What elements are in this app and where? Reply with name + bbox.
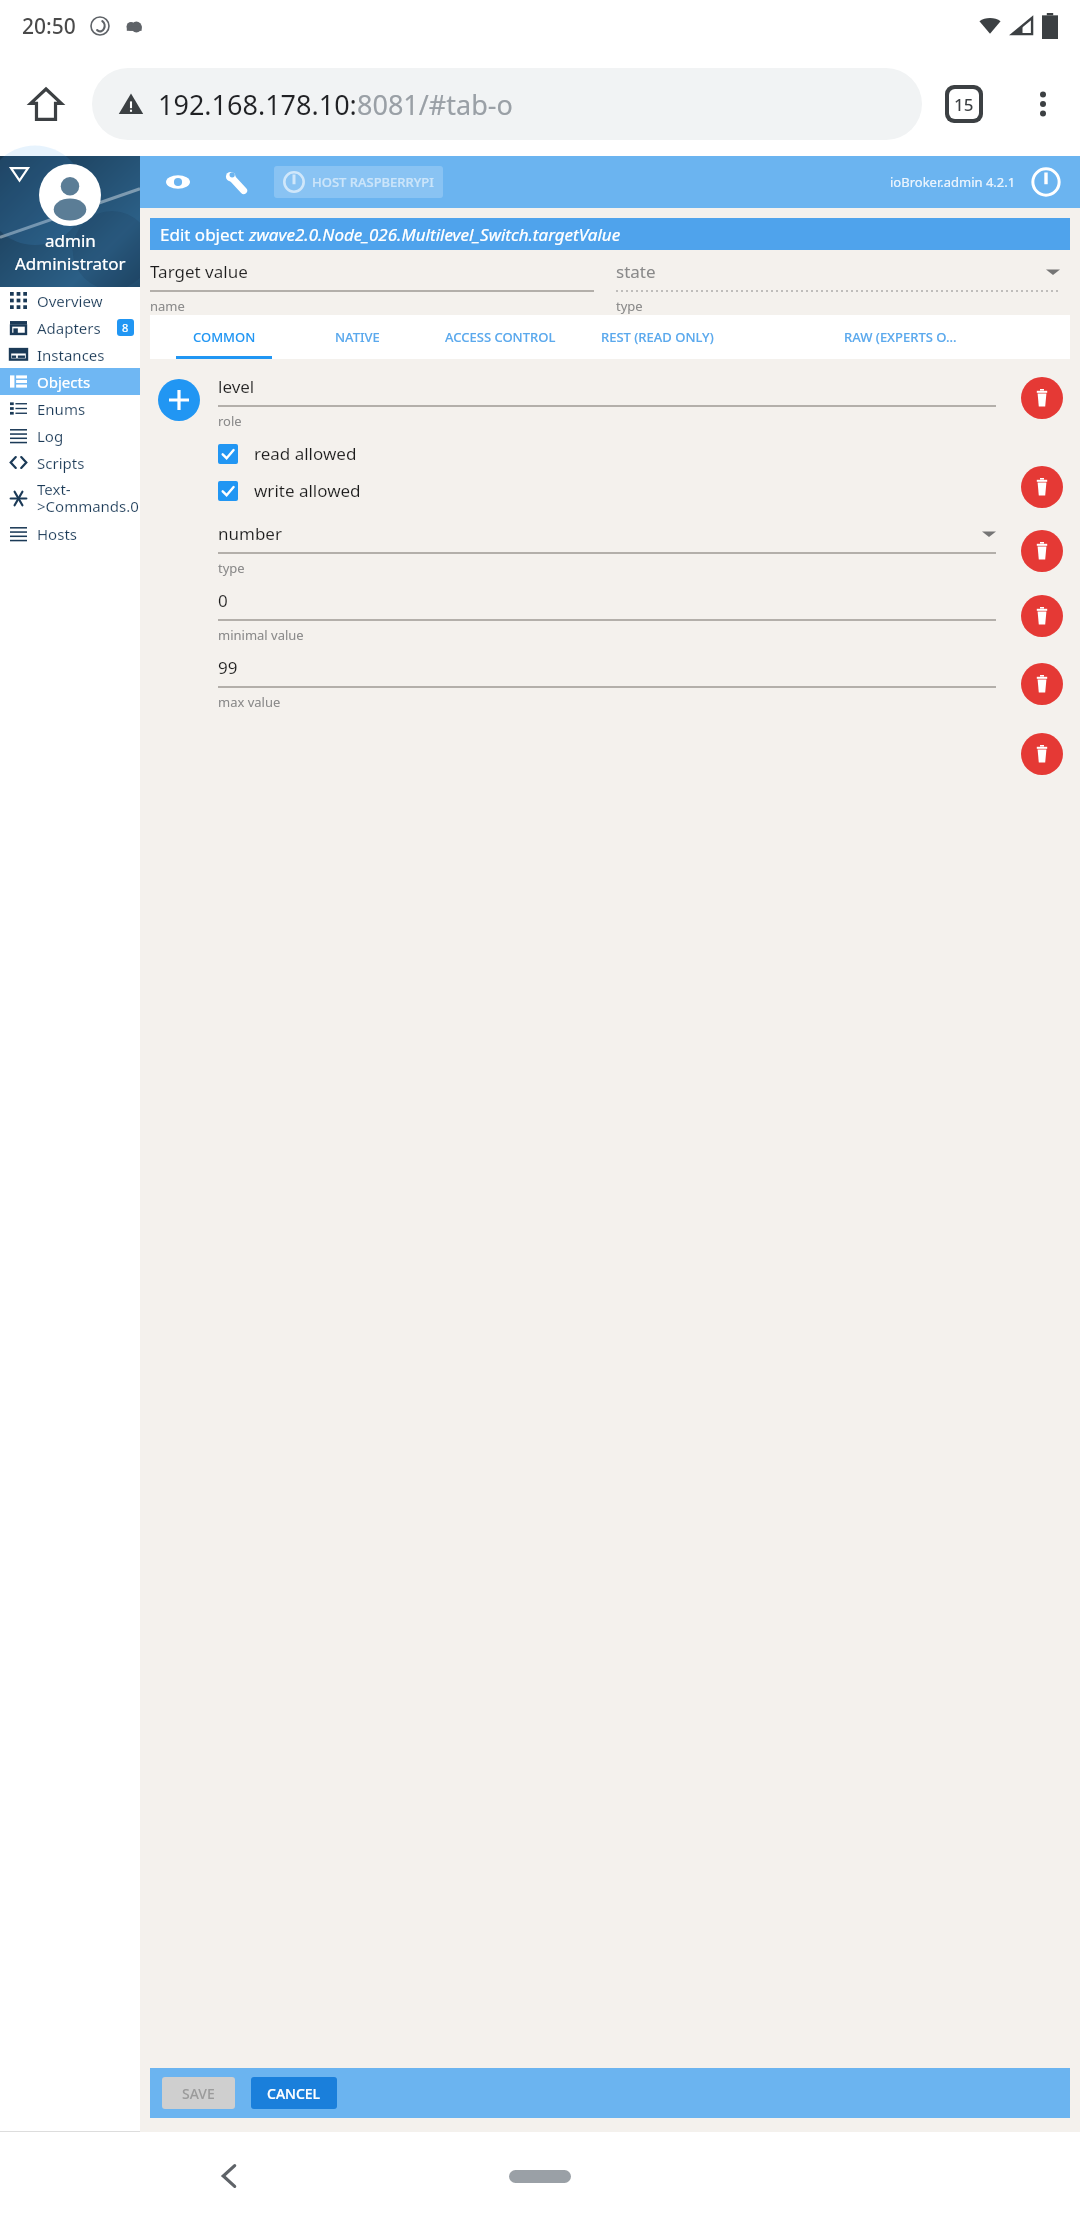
staticText: Instances <box>37 345 140 365</box>
button[interactable]: Hosts <box>0 520 140 547</box>
staticText: admin <box>45 229 96 252</box>
button[interactable]: 192.168.178.10: <box>92 68 922 140</box>
staticText: 192.168.178.10: <box>158 86 357 123</box>
button[interactable]: More options <box>1006 52 1080 156</box>
button[interactable]: Delete <box>1021 530 1063 572</box>
staticText: Adapters <box>37 318 117 338</box>
staticText: CANCEL <box>267 2084 321 2103</box>
button[interactable]: NATIVE <box>298 315 416 359</box>
button[interactable]: Delete <box>1021 595 1063 637</box>
button[interactable]: Expert mode <box>156 160 200 204</box>
staticText: Text- >Commands.0 <box>37 479 140 517</box>
staticText: SAVE <box>182 2084 215 2103</box>
staticText: write allowed <box>254 479 361 502</box>
button[interactable]: Instances <box>0 341 140 368</box>
button[interactable]: CANCEL <box>251 2077 337 2109</box>
button[interactable]: Tabs: 15 <box>922 52 1006 156</box>
staticText: read allowed <box>254 442 357 465</box>
button[interactable]: level <box>218 375 996 430</box>
button[interactable]: 99 <box>218 656 996 711</box>
button[interactable]: Scripts <box>0 449 140 476</box>
button[interactable]: Overview <box>0 287 140 314</box>
staticText: Objects <box>37 372 140 392</box>
button[interactable]: read allowed <box>218 442 996 465</box>
staticText: RAW (EXPERTS O… <box>844 328 957 346</box>
button[interactable]: Power <box>1028 164 1064 200</box>
button[interactable]: number <box>218 522 996 577</box>
staticText: 20:50 <box>22 12 76 41</box>
staticText: 8081/#tab-o <box>357 86 513 123</box>
staticText: zwave2.0.Node_026.Multilevel_Switch.targ… <box>249 223 621 246</box>
staticText: NATIVE <box>335 328 380 346</box>
button[interactable]: Collapse menu <box>6 160 32 186</box>
staticText: number <box>218 522 982 545</box>
staticText: HOST RASPBERRYPI <box>312 173 434 191</box>
staticText: ACCESS CONTROL <box>445 328 556 346</box>
button[interactable]: Target value <box>150 260 594 315</box>
button[interactable]: Add <box>158 379 200 421</box>
staticText: level <box>218 375 996 398</box>
button[interactable]: state <box>616 260 1060 315</box>
staticText: REST (READ ONLY) <box>601 328 714 346</box>
button[interactable]: Home <box>0 52 92 156</box>
staticText: Scripts <box>37 453 140 473</box>
staticText: 15 <box>954 93 974 116</box>
button[interactable]: HOST RASPBERRYPI <box>274 166 443 198</box>
button[interactable]: REST (READ ONLY) <box>584 315 730 359</box>
staticText: name <box>150 297 185 315</box>
button[interactable]: Log <box>0 422 140 449</box>
button[interactable]: Text- >Commands.0 <box>0 476 140 520</box>
staticText: Administrator <box>15 252 126 275</box>
staticText: 0 <box>218 589 996 612</box>
staticText: Log <box>37 426 140 446</box>
staticText: role <box>218 412 242 430</box>
staticText: Target value <box>150 260 594 283</box>
button[interactable]: Enums <box>0 395 140 422</box>
staticText: Edit object <box>160 223 249 246</box>
staticText: type <box>218 559 245 577</box>
button[interactable]: Settings <box>214 160 258 204</box>
button[interactable]: RAW (EXPERTS O… <box>730 315 1070 359</box>
button[interactable]: SAVE <box>162 2077 235 2109</box>
button[interactable]: Home <box>500 2160 580 2192</box>
staticText: Overview <box>37 291 140 311</box>
button[interactable]: Objects <box>0 368 140 395</box>
button[interactable]: Delete <box>1021 663 1063 705</box>
button[interactable]: COMMON <box>150 315 298 359</box>
staticText: 8 <box>122 320 129 335</box>
staticText: Enums <box>37 399 140 419</box>
button[interactable]: write allowed <box>218 479 996 502</box>
button[interactable]: Back <box>200 2146 260 2206</box>
button[interactable]: Delete <box>1021 377 1063 419</box>
staticText: Hosts <box>37 524 140 544</box>
button[interactable]: Adapters <box>0 314 140 341</box>
staticText: type <box>616 297 643 315</box>
staticText: minimal value <box>218 626 304 644</box>
button[interactable]: ACCESS CONTROL <box>416 315 584 359</box>
staticText: 99 <box>218 656 996 679</box>
button[interactable]: 0 <box>218 589 996 644</box>
staticText: ioBroker.admin 4.2.1 <box>890 173 1016 191</box>
staticText: COMMON <box>193 328 256 346</box>
staticText: state <box>616 260 1046 283</box>
staticText: max value <box>218 693 281 711</box>
button[interactable]: Delete <box>1021 466 1063 508</box>
button[interactable]: Delete <box>1021 733 1063 775</box>
